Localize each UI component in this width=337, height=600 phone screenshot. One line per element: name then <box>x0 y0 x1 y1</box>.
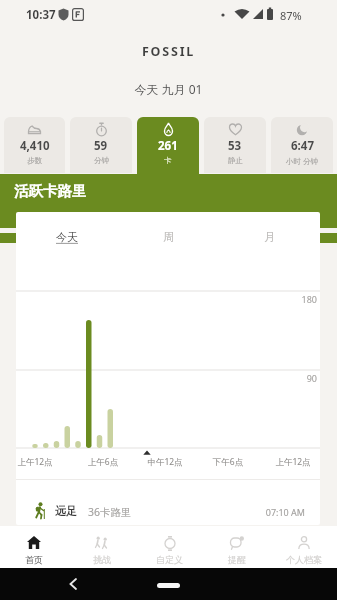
staticText: 首页 <box>25 554 43 565</box>
staticText: 步数 <box>27 156 42 165</box>
staticText: 10:37 <box>26 7 56 23</box>
staticText: 36卡路里 <box>88 505 132 519</box>
staticText: 卡 <box>164 156 172 165</box>
button[interactable]: 261 <box>137 117 199 174</box>
staticText: 上午12点 <box>258 456 320 468</box>
staticText: 今天 九月 01 <box>0 81 337 97</box>
button[interactable]: 53 <box>204 117 266 173</box>
staticText: 中午12点 <box>130 456 200 468</box>
button[interactable]: 59 <box>70 117 132 173</box>
button[interactable]: 挑战 <box>68 526 136 568</box>
staticText: 活跃卡路里 <box>14 182 87 200</box>
staticText: 90 <box>277 372 317 384</box>
staticText: 上午12点 <box>16 456 70 468</box>
button[interactable]: 远足 <box>16 480 320 525</box>
staticText: 小时 分钟 <box>286 156 318 166</box>
staticText: 分钟 <box>94 156 109 165</box>
button[interactable]: 4,410 <box>4 117 65 173</box>
staticText: 59 <box>94 138 108 154</box>
button[interactable]: 今天 <box>16 226 118 248</box>
staticText: 远足 <box>55 504 77 518</box>
staticText: 53 <box>228 138 242 154</box>
staticText: FOSSIL <box>0 43 337 60</box>
staticText: 4,410 <box>20 138 50 154</box>
staticText: 180 <box>277 293 317 305</box>
staticText: 今天 <box>56 230 78 244</box>
button[interactable]: 提醒 <box>203 526 270 568</box>
button[interactable]: 个人档案 <box>270 526 337 568</box>
staticText: 周 <box>163 230 174 244</box>
button[interactable]: 月 <box>219 226 320 248</box>
staticText: 个人档案 <box>286 554 322 565</box>
button[interactable] <box>157 583 180 588</box>
staticText: 提醒 <box>228 554 246 565</box>
staticText: 07:10 AM <box>225 506 305 518</box>
staticText: 6:47 <box>291 138 314 154</box>
staticText: 87% <box>280 8 302 23</box>
button[interactable] <box>68 578 78 590</box>
staticText: 下午6点 <box>193 456 263 468</box>
button[interactable]: 周 <box>118 226 219 248</box>
staticText: 自定义 <box>156 554 183 565</box>
button[interactable]: 首页 <box>0 526 68 568</box>
staticText: 261 <box>158 138 178 154</box>
staticText: 挑战 <box>93 554 111 565</box>
button[interactable]: 自定义 <box>136 526 203 568</box>
button[interactable]: 6:47 <box>271 117 333 173</box>
staticText: 静止 <box>228 156 243 165</box>
staticText: 月 <box>264 230 275 244</box>
staticText: 上午6点 <box>68 456 138 468</box>
